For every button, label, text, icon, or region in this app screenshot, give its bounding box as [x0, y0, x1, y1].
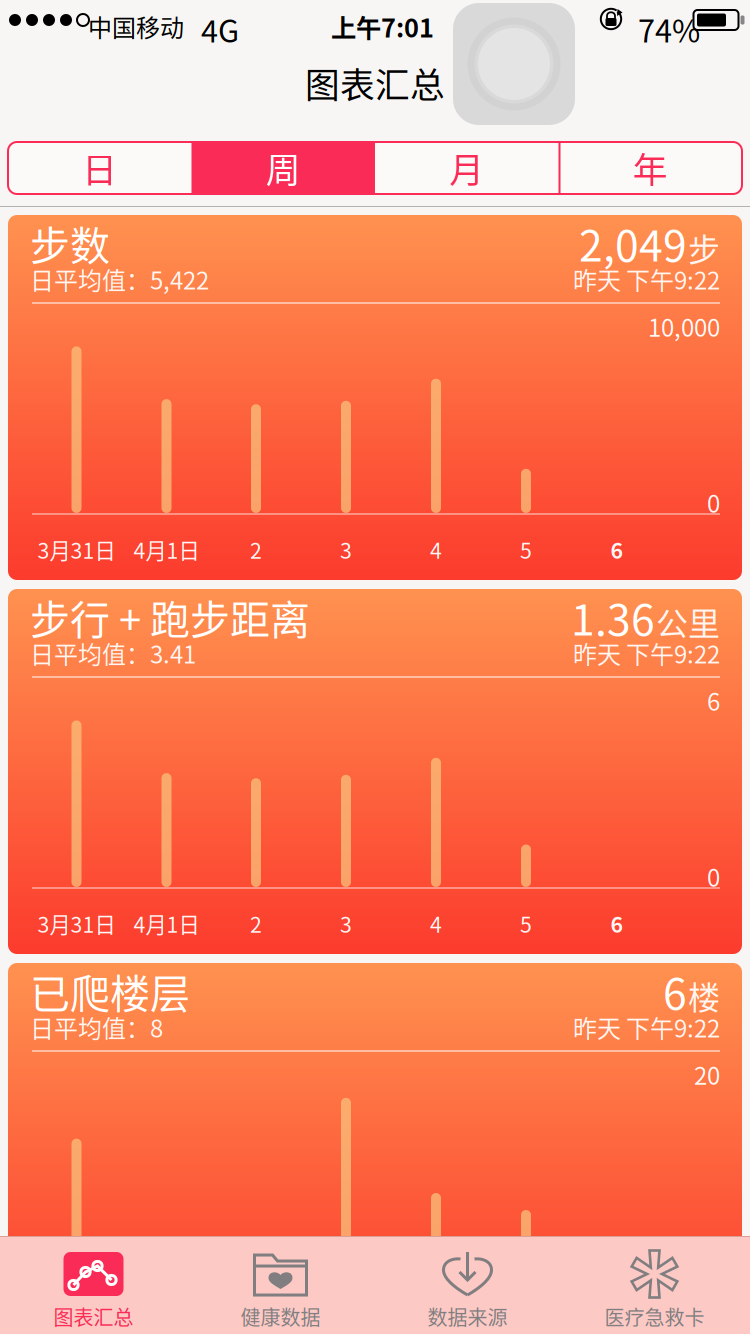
staticText: 6 — [663, 960, 687, 1022]
staticText: 1.36 — [571, 586, 655, 648]
staticText: 日平均值：8 — [30, 1010, 163, 1044]
staticText: 2 — [250, 1282, 262, 1313]
staticText: 日平均值：3.41 — [30, 636, 196, 670]
staticText: 3 — [340, 534, 352, 565]
staticText: 0 — [707, 485, 720, 520]
staticText: 3月31日 — [37, 534, 115, 565]
staticText: 昨天 下午9:22 — [573, 262, 720, 296]
staticText: 3月31日 — [37, 1282, 115, 1313]
staticText: 6 — [610, 534, 623, 565]
staticText: 步 — [688, 224, 720, 271]
staticText: 月 — [449, 143, 484, 193]
staticText: 4 — [430, 534, 442, 565]
staticText: 健康数据 — [240, 1302, 320, 1331]
staticText: 3月31日 — [37, 908, 115, 939]
staticText: 6 — [610, 1282, 623, 1313]
staticText: 2 — [250, 908, 262, 939]
button[interactable]: 数据来源 — [374, 1236, 561, 1334]
staticText: 医疗急救卡 — [604, 1302, 704, 1331]
staticText: 年 — [633, 143, 668, 193]
staticText: 5 — [520, 908, 532, 939]
staticText: 6 — [707, 683, 720, 718]
staticText: 昨天 下午9:22 — [573, 1010, 720, 1044]
staticText: 图表汇总 — [53, 1302, 133, 1331]
button[interactable]: 年 — [558, 142, 742, 194]
staticText: 2,049 — [579, 212, 687, 274]
staticText: 6 — [610, 908, 623, 939]
staticText: 2 — [250, 534, 262, 565]
staticText: 步数 — [30, 214, 110, 272]
staticText: 0 — [707, 1233, 720, 1268]
staticText: 10,000 — [648, 309, 720, 344]
button[interactable]: 健康数据 — [187, 1236, 374, 1334]
staticText: 公里 — [656, 598, 720, 645]
staticText: 数据来源 — [427, 1302, 507, 1331]
staticText: 图表汇总 — [305, 58, 445, 108]
button[interactable]: 日 — [8, 142, 191, 194]
button[interactable]: 月 — [375, 142, 558, 194]
staticText: 3 — [340, 908, 352, 939]
staticText: 日 — [82, 143, 117, 193]
button[interactable]: 周 — [191, 142, 375, 194]
button[interactable]: 图表汇总 — [0, 1236, 187, 1334]
staticText: 步行 + 跑步距离 — [30, 588, 310, 646]
staticText: 0 — [707, 859, 720, 894]
staticText: 中国移动 — [88, 9, 184, 44]
staticText: 4 — [430, 1282, 442, 1313]
staticText: 上午7:01 — [331, 8, 434, 45]
staticText: 74% — [638, 7, 700, 51]
staticText: 4月1日 — [133, 908, 199, 939]
staticText: 20 — [694, 1057, 720, 1092]
staticText: 4 — [430, 908, 442, 939]
staticText: 周 — [266, 143, 301, 193]
staticText: 楼 — [688, 972, 720, 1019]
button[interactable]: 医疗急救卡 — [561, 1236, 748, 1334]
staticText: 4G — [201, 7, 239, 51]
staticText: 4月1日 — [133, 534, 199, 565]
staticText: 日平均值：5,422 — [30, 262, 209, 296]
staticText: 已爬楼层 — [30, 962, 190, 1020]
staticText: 5 — [520, 534, 532, 565]
staticText: 昨天 下午9:22 — [573, 636, 720, 670]
